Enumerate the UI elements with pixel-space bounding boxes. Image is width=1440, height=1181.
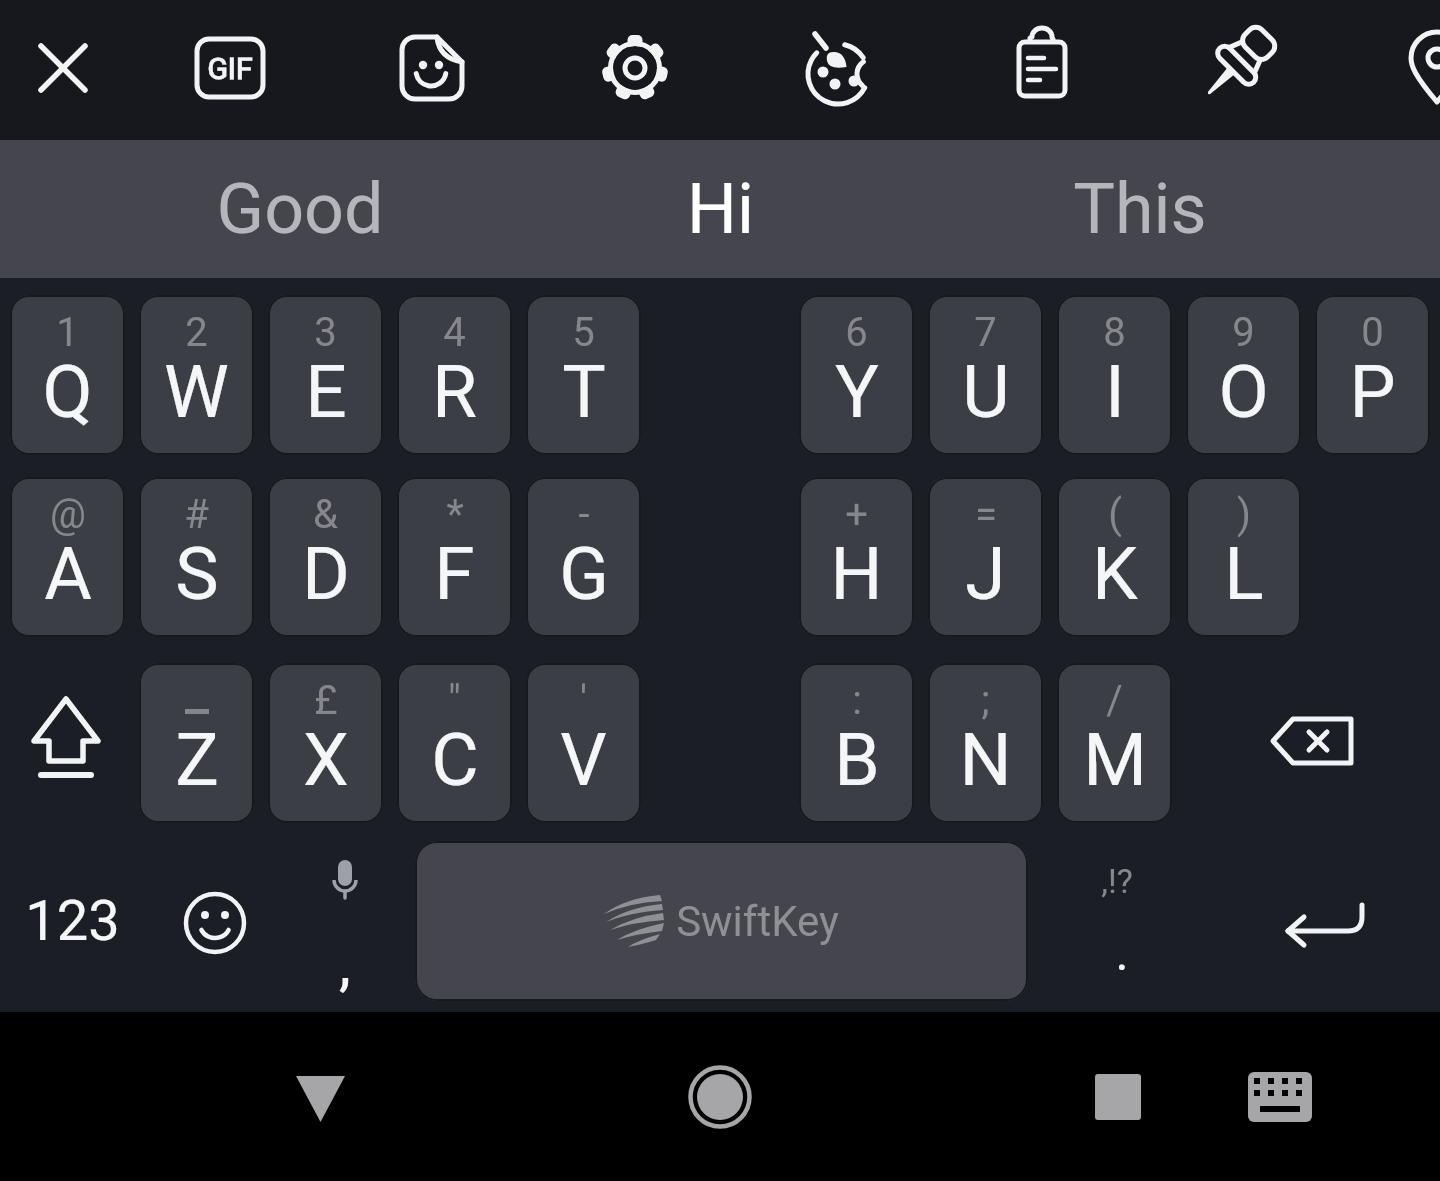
- staticText: £: [314, 677, 338, 724]
- staticText: 1: [56, 309, 79, 356]
- button[interactable]: 4: [397, 295, 512, 455]
- staticText: P: [1349, 349, 1396, 435]
- staticText: 4: [443, 309, 466, 356]
- staticText: V: [560, 717, 607, 803]
- button[interactable]: #: [139, 477, 254, 637]
- staticText: C: [431, 717, 479, 803]
- button[interactable]: Good: [90, 140, 510, 278]
- button[interactable]: 8: [1057, 295, 1172, 455]
- button[interactable]: [1050, 841, 1190, 1001]
- staticText: B: [834, 717, 880, 803]
- button[interactable]: [1250, 663, 1430, 823]
- button[interactable]: [260, 1037, 380, 1157]
- staticText: 5: [572, 309, 595, 356]
- staticText: 7: [974, 309, 997, 356]
- button[interactable]: ': [526, 663, 641, 823]
- staticText: .: [1115, 924, 1129, 983]
- button[interactable]: This: [930, 140, 1350, 278]
- button[interactable]: [1181, 13, 1291, 127]
- staticText: F: [434, 531, 475, 617]
- staticText: &: [313, 491, 338, 538]
- staticText: I: [1105, 349, 1125, 435]
- button[interactable]: &: [268, 477, 383, 637]
- staticText: 6: [845, 309, 868, 356]
- button[interactable]: ": [397, 663, 512, 823]
- button[interactable]: SwiftKey: [415, 841, 1028, 1001]
- staticText: H: [830, 531, 883, 617]
- staticText: ": [448, 677, 461, 724]
- button[interactable]: [290, 841, 405, 1001]
- staticText: =: [975, 491, 997, 538]
- staticText: (: [1108, 491, 1122, 538]
- button[interactable]: [580, 13, 690, 127]
- button[interactable]: ;: [928, 663, 1043, 823]
- button[interactable]: 0: [1315, 295, 1430, 455]
- button[interactable]: [1240, 841, 1430, 1001]
- button[interactable]: Z: [139, 663, 254, 823]
- button[interactable]: [1375, 13, 1440, 127]
- staticText: 3: [314, 309, 337, 356]
- button[interactable]: Hi: [510, 140, 930, 278]
- staticText: Q: [42, 349, 93, 435]
- staticText: ': [580, 677, 587, 724]
- staticText: *: [446, 491, 464, 538]
- staticText: Y: [835, 349, 879, 435]
- button[interactable]: :: [799, 663, 914, 823]
- button[interactable]: 3: [268, 295, 383, 455]
- button[interactable]: [175, 13, 285, 127]
- staticText: K: [1092, 531, 1138, 617]
- button[interactable]: [783, 13, 893, 127]
- staticText: W: [164, 349, 229, 435]
- button[interactable]: (: [1057, 477, 1172, 637]
- button[interactable]: [378, 13, 488, 127]
- staticText: Good: [216, 168, 384, 250]
- staticText: 8: [1103, 309, 1126, 356]
- button[interactable]: 9: [1186, 295, 1301, 455]
- staticText: -: [578, 491, 590, 538]
- button[interactable]: [8, 13, 118, 127]
- staticText: M: [1083, 717, 1147, 803]
- staticText: ): [1237, 491, 1251, 538]
- button[interactable]: 5: [526, 295, 641, 455]
- button[interactable]: +: [799, 477, 914, 637]
- staticText: L: [1224, 531, 1264, 617]
- staticText: ,: [339, 928, 351, 998]
- button[interactable]: ): [1186, 477, 1301, 637]
- button[interactable]: -: [526, 477, 641, 637]
- button[interactable]: /: [1057, 663, 1172, 823]
- staticText: Hi: [687, 168, 754, 250]
- button[interactable]: [987, 13, 1097, 127]
- button[interactable]: [10, 663, 125, 823]
- staticText: #: [184, 491, 209, 538]
- button[interactable]: @: [10, 477, 125, 637]
- staticText: R: [432, 349, 477, 435]
- staticText: /: [1106, 677, 1123, 724]
- button[interactable]: [660, 1037, 780, 1157]
- staticText: SwiftKey: [676, 897, 839, 946]
- button[interactable]: =: [928, 477, 1043, 637]
- button[interactable]: [1220, 1037, 1340, 1157]
- staticText: 9: [1232, 309, 1255, 356]
- button[interactable]: *: [397, 477, 512, 637]
- staticText: G: [559, 531, 609, 617]
- staticText: S: [175, 531, 219, 617]
- staticText: N: [959, 717, 1012, 803]
- staticText: ,!?: [1101, 861, 1133, 901]
- button[interactable]: £: [268, 663, 383, 823]
- staticText: J: [965, 531, 1006, 617]
- staticText: +: [845, 491, 868, 538]
- staticText: :: [852, 677, 862, 724]
- staticText: X: [303, 717, 349, 803]
- staticText: @: [50, 491, 86, 538]
- button[interactable]: 6: [799, 295, 914, 455]
- staticText: T: [562, 349, 606, 435]
- staticText: E: [305, 349, 347, 435]
- button[interactable]: 2: [139, 295, 254, 455]
- button[interactable]: [150, 841, 280, 1001]
- button[interactable]: 1: [10, 295, 125, 455]
- staticText: D: [302, 531, 350, 617]
- button[interactable]: [10, 841, 125, 1001]
- button[interactable]: [1058, 1037, 1178, 1157]
- staticText: A: [44, 531, 92, 617]
- button[interactable]: 7: [928, 295, 1043, 455]
